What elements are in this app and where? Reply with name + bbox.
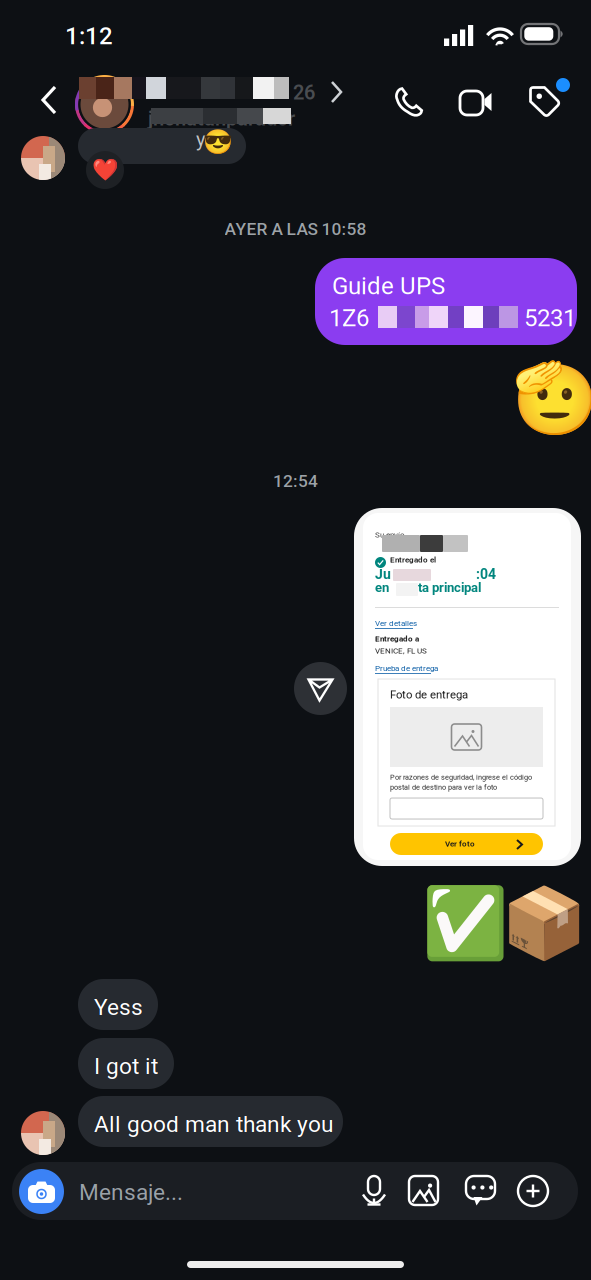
button[interactable]: Su envío: [354, 508, 581, 866]
staticText: 1:12: [65, 22, 113, 50]
staticText: y: [196, 128, 205, 151]
staticText: Entregado a: [375, 634, 419, 643]
staticText: :04: [476, 566, 496, 582]
staticText: ❤️: [91, 157, 118, 182]
staticText: Ver detalles: [375, 618, 417, 628]
staticText: en: [375, 580, 389, 595]
button[interactable]: Yess: [78, 979, 158, 1030]
button[interactable]: jhonatanparador: [75, 64, 350, 134]
staticText: Ver foto: [445, 839, 475, 848]
staticText: Su envío: [375, 530, 405, 539]
staticText: VENICE, FL US: [375, 646, 427, 655]
staticText: Yess: [94, 994, 143, 1021]
staticText: 5231: [524, 304, 576, 332]
staticText: jhonatanparador: [148, 107, 295, 130]
staticText: ✅: [422, 883, 508, 964]
staticText: Entregado el: [390, 555, 436, 564]
staticText: I got it: [94, 1053, 158, 1080]
staticText: 📦: [501, 883, 587, 964]
staticText: 26: [293, 81, 315, 104]
button[interactable]: Guide UPS: [315, 258, 577, 345]
button[interactable]: More: [508, 1166, 558, 1216]
button[interactable]: All good man thank you: [78, 1096, 343, 1147]
button[interactable]: Voice message: [351, 1166, 397, 1216]
staticText: 1Z6: [329, 304, 369, 332]
staticText: 😎: [203, 128, 233, 156]
staticText: Guide UPS: [332, 272, 445, 300]
button[interactable]: Stickers: [456, 1166, 505, 1216]
staticText: Foto de entrega: [390, 688, 468, 701]
staticText: Por razones de seguridad, ingrese el cód…: [390, 773, 532, 782]
button[interactable]: Camera: [19, 1169, 64, 1214]
button[interactable]: Back: [21, 67, 77, 133]
staticText: Prueba de entrega: [375, 663, 438, 673]
button[interactable]: I got it: [78, 1038, 174, 1089]
button[interactable]: Video call: [449, 75, 503, 131]
button[interactable]: Audio call: [381, 74, 437, 130]
staticText: All good man thank you: [94, 1111, 333, 1138]
staticText: 🫡: [512, 358, 591, 439]
staticText: uerta principal: [399, 580, 481, 595]
staticText: postal de destino para ver la foto: [390, 783, 497, 792]
staticText: Ju: [375, 566, 391, 582]
staticText: Mensaje...: [79, 1179, 183, 1206]
staticText: AYER A LAS 10:58: [224, 219, 366, 239]
button[interactable]: Share: [294, 662, 347, 715]
button[interactable]: Tagged: [518, 67, 580, 129]
button[interactable]: Photos: [399, 1166, 448, 1215]
staticText: 12:54: [273, 471, 318, 491]
